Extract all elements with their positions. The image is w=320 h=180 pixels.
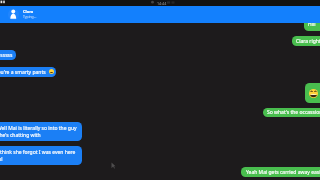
button[interactable]: you're a smarty pants <box>0 67 56 77</box>
button[interactable]: Clara profile photo <box>0 6 320 23</box>
button[interactable]: Clara right? <box>292 36 320 46</box>
staticText: I think she forgot I was even here <box>0 149 76 156</box>
staticText: lol <box>0 156 3 163</box>
staticText: Clara <box>23 9 34 14</box>
button[interactable]: Sent message: grinning face emoji <box>305 83 320 103</box>
staticText: she's chatting with <box>0 132 41 139</box>
button[interactable]: Well Mai is literally so into the guy <box>0 122 82 141</box>
button[interactable]: So what's the occassion? <box>263 108 320 117</box>
button[interactable]: Yeah Mai gets carried away easily <box>241 167 320 177</box>
staticText: 14:44 <box>157 1 167 6</box>
staticText: Hiii <box>308 21 316 28</box>
staticText: So what's the occassion? <box>267 109 320 116</box>
button[interactable]: yesssss <box>0 50 16 60</box>
other: Clara profile photo <box>8 9 19 20</box>
button[interactable]: I think she forgot I was even here <box>0 146 82 165</box>
staticText: Well Mai is literally so into the guy <box>0 125 77 132</box>
staticText: you're a smarty pants <box>0 69 46 76</box>
button[interactable]: Hiii <box>304 18 320 31</box>
staticText: Yeah Mai gets carried away easily <box>246 169 320 176</box>
staticText: yesssss <box>0 52 13 59</box>
staticText: Clara right? <box>296 38 320 45</box>
staticText: Typing... <box>23 14 37 19</box>
